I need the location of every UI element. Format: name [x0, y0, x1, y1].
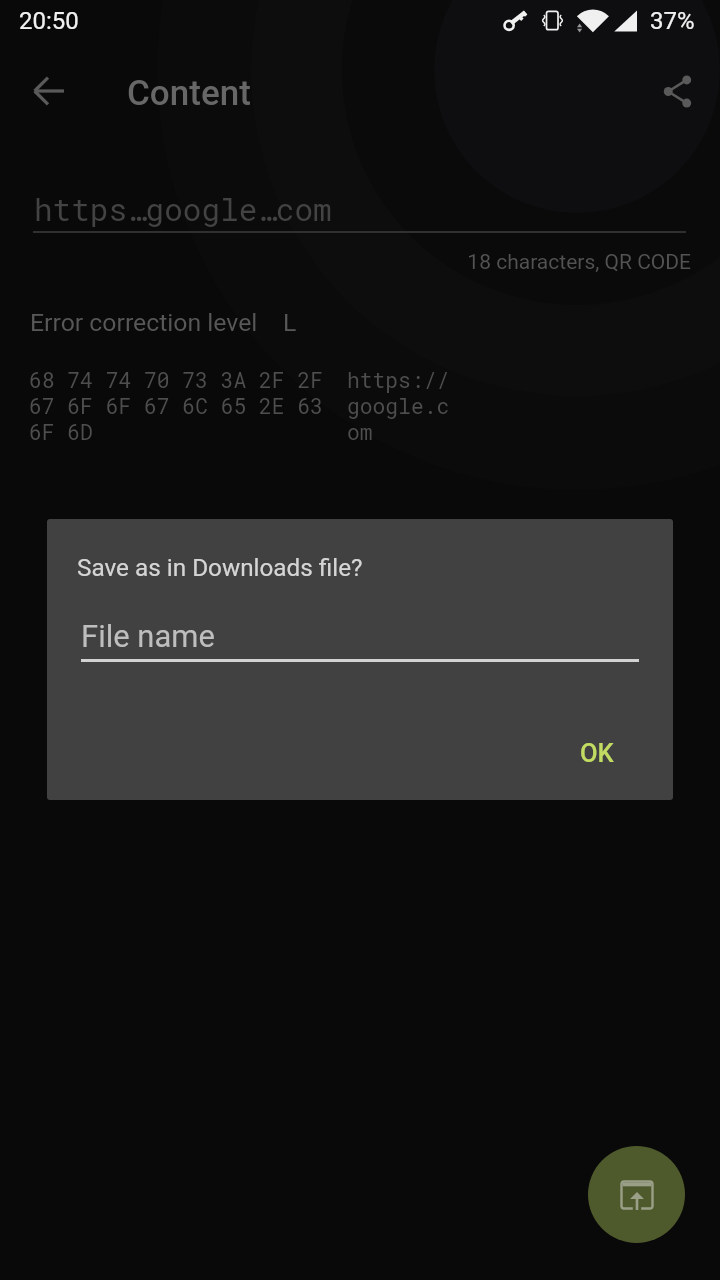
staticText: OK: [580, 738, 614, 768]
staticText: https…google…com: [34, 189, 332, 230]
staticText: Error correction level: [30, 308, 258, 337]
staticText: File name: [81, 618, 215, 654]
staticText: 68 74 74 70 73 3A 2F 2F 67 6F 6F 67 6C 6…: [29, 366, 323, 446]
button[interactable]: Back: [13, 55, 85, 127]
staticText: Save as in Downloads file?: [77, 553, 363, 581]
button[interactable]: OK: [557, 724, 637, 782]
staticText: L: [283, 308, 297, 337]
staticText: Content: [127, 73, 251, 114]
staticText: 37%: [650, 7, 695, 35]
staticText: https:// google.c om: [347, 366, 450, 446]
staticText: 20:50: [19, 7, 79, 35]
staticText: 18 characters, QR CODE: [0, 250, 691, 275]
button[interactable]: Share: [641, 55, 713, 127]
button[interactable]: Save to device: [588, 1146, 685, 1243]
